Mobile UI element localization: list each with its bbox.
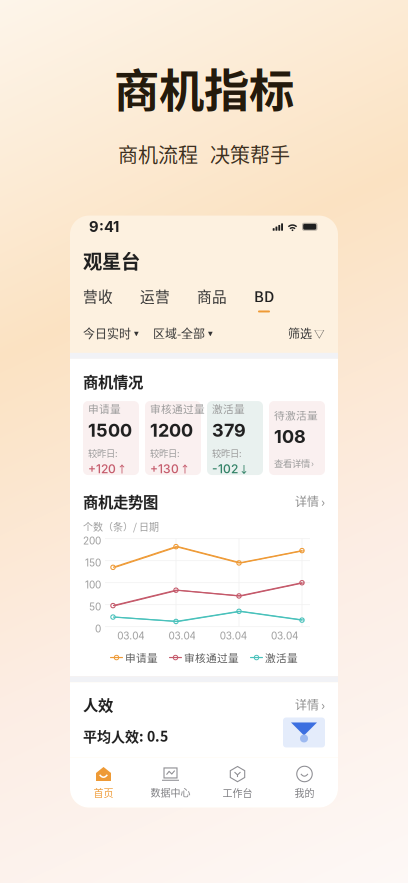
staticText: 379 — [212, 419, 246, 441]
button[interactable]: 审核通过量 — [145, 401, 201, 475]
staticText: 首页 — [93, 785, 113, 800]
staticText: 营收 — [83, 285, 113, 306]
staticText: 商机走势图 — [83, 490, 158, 512]
staticText: 100 — [85, 579, 101, 591]
staticText: 较昨日: — [88, 446, 118, 460]
staticText: 1200 — [150, 419, 193, 441]
button[interactable]: 我的 — [271, 762, 338, 803]
staticText: 数据中心 — [150, 785, 190, 799]
staticText: 查看详情 — [274, 456, 310, 470]
staticText: › — [321, 491, 325, 511]
button[interactable]: 工作台 — [204, 762, 271, 803]
staticText: 03.04 — [117, 630, 144, 642]
staticText: 区域-全部 — [153, 324, 205, 342]
staticText: 03.04 — [271, 630, 298, 642]
staticText: 工作台 — [222, 785, 252, 800]
staticText: 激活量 — [212, 401, 245, 416]
staticText: 03.04 — [168, 630, 195, 642]
button[interactable]: 待激活量 — [269, 401, 325, 475]
staticText: ▽ — [314, 325, 325, 341]
staticText: 200 — [83, 535, 101, 547]
staticText: 待激活量 — [274, 407, 318, 423]
staticText: 人效 — [83, 693, 113, 715]
button[interactable]: 筛选 — [288, 324, 325, 342]
staticText: +130 — [150, 462, 179, 476]
staticText: 03.04 — [220, 630, 247, 642]
staticText: +120 — [88, 462, 116, 476]
button[interactable]: 今日实时 — [83, 324, 139, 342]
staticText: › — [311, 456, 314, 470]
button[interactable]: 首页 — [70, 762, 137, 803]
staticText: ▾ — [208, 328, 213, 339]
staticText: 审核通过量 — [150, 401, 205, 416]
staticText: 激活量 — [265, 650, 298, 665]
button[interactable]: 激活量 — [207, 401, 263, 475]
staticText: 较昨日: — [150, 446, 180, 460]
staticText: 商机情况 — [83, 370, 143, 392]
staticText: 商机指标 — [114, 55, 294, 121]
staticText: -102 — [212, 462, 238, 476]
staticText: ↓ — [239, 462, 249, 476]
staticText: 商品 — [197, 285, 227, 306]
button[interactable]: 详情 — [295, 491, 325, 511]
button[interactable]: 商品 — [197, 285, 227, 306]
staticText: 申请量 — [125, 650, 158, 665]
button[interactable]: 申请量 — [83, 401, 139, 475]
staticText: 详情 — [295, 492, 319, 510]
staticText: 个数（条）/ 日期 — [83, 519, 159, 534]
button[interactable]: 数据中心 — [137, 763, 204, 802]
staticText: 较昨日: — [212, 446, 242, 460]
staticText: 108 — [274, 426, 306, 447]
staticText: ▾ — [134, 328, 139, 339]
staticText: 运营 — [140, 285, 170, 306]
staticText: 0 — [95, 623, 101, 635]
staticText: 1500 — [88, 419, 132, 441]
button[interactable]: 营收 — [83, 285, 113, 306]
staticText: 我的 — [294, 785, 314, 800]
button[interactable]: 详情 — [295, 695, 325, 714]
staticText: 观星台 — [83, 246, 140, 274]
button[interactable]: 区域-全部 — [153, 324, 213, 342]
staticText: 150 — [85, 557, 101, 569]
staticText: 平均人效: 0.5 — [83, 725, 168, 746]
staticText: 9:41 — [89, 218, 119, 236]
staticText: BD — [254, 285, 274, 306]
staticText: 商机流程 决策帮手 — [118, 140, 290, 169]
button[interactable]: 运营 — [140, 285, 170, 306]
staticText: 申请量 — [88, 401, 121, 416]
staticText: ↑ — [117, 462, 127, 476]
staticText: 今日实时 — [83, 324, 131, 342]
staticText: 审核通过量 — [184, 650, 239, 665]
staticText: 50 — [89, 601, 101, 613]
staticText: 详情 — [295, 696, 319, 713]
button[interactable]: BD — [254, 285, 274, 312]
staticText: › — [321, 695, 325, 714]
staticText: 筛选 — [288, 324, 312, 342]
staticText: ↑ — [180, 462, 190, 476]
